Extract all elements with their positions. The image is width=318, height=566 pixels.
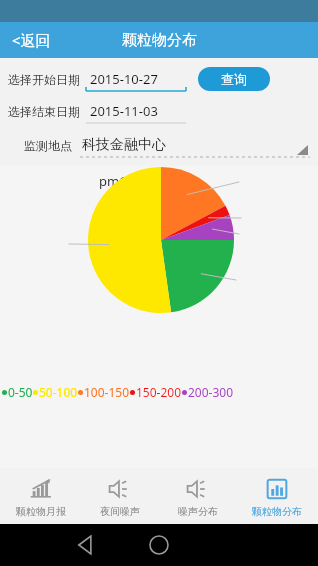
button[interactable]: 2015-11-03	[86, 98, 186, 124]
staticText: 0-50	[8, 384, 33, 400]
staticText: 颗粒物月报	[16, 505, 66, 518]
button[interactable]: 颗粒物月报	[3, 469, 79, 524]
button[interactable]: 夜间噪声	[82, 469, 158, 524]
staticText: 夜间噪声	[100, 505, 140, 518]
staticText: 颗粒物分布	[122, 31, 197, 50]
button[interactable]: 颗粒物分布	[239, 469, 315, 524]
button[interactable]: 查询	[198, 67, 270, 91]
staticText: 150-200	[136, 384, 182, 400]
staticText: 200-300	[188, 384, 234, 400]
staticText: 2015-10-27	[90, 70, 158, 88]
staticText: 科技金融中心	[82, 136, 166, 154]
staticText: 颗粒物分布	[252, 505, 302, 518]
staticText: 选择结束日期	[8, 104, 80, 119]
button[interactable]: <返回	[6, 26, 57, 54]
staticText: 查询	[221, 71, 247, 87]
staticText: 50-100	[39, 384, 78, 400]
staticText: 监测地点	[24, 138, 72, 153]
staticText: 100-150	[84, 384, 130, 400]
staticText: 选择开始日期	[8, 72, 80, 87]
staticText: 噪声分布	[178, 505, 218, 518]
button[interactable]: 噪声分布	[160, 469, 236, 524]
button[interactable]: 2015-10-27	[86, 66, 186, 92]
staticText: pm10统计结果	[99, 172, 187, 190]
staticText: <返回	[12, 30, 51, 50]
button[interactable]: 监测地点	[0, 130, 318, 160]
staticText: 2015-11-03	[90, 102, 158, 120]
